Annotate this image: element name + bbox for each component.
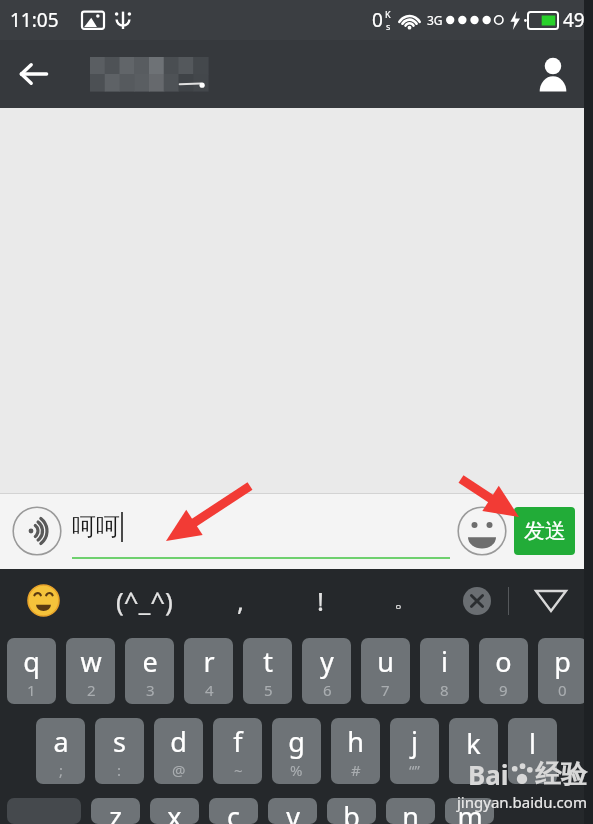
button[interactable]: j	[390, 718, 439, 784]
staticText: ;	[59, 760, 64, 780]
staticText: f	[233, 723, 243, 760]
staticText: i	[441, 643, 448, 680]
staticText: ,	[237, 583, 244, 618]
staticText: :	[117, 760, 122, 780]
staticText: t	[263, 643, 273, 680]
staticText: u	[377, 643, 394, 680]
button[interactable]: c	[209, 798, 258, 824]
button[interactable]: g	[272, 718, 321, 784]
staticText: ~	[234, 760, 243, 780]
staticText: 0	[558, 680, 567, 700]
button[interactable]: e	[125, 638, 174, 704]
button[interactable]: ,	[202, 569, 278, 632]
staticText: h	[347, 723, 364, 760]
button[interactable]: p	[538, 638, 587, 704]
staticText: 9	[499, 680, 508, 700]
staticText: 4	[205, 680, 214, 700]
button[interactable]: Hide keyboard	[509, 569, 593, 632]
staticText: j	[411, 723, 418, 760]
staticText: “”	[409, 760, 420, 780]
button[interactable]: u	[361, 638, 410, 704]
staticText: s	[113, 723, 126, 760]
button[interactable]: f	[213, 718, 262, 784]
button[interactable]: Voice input	[10, 504, 64, 558]
staticText: #	[351, 760, 361, 780]
button[interactable]: m	[445, 798, 494, 824]
staticText: 6	[323, 680, 332, 700]
staticText: c	[227, 798, 240, 824]
button[interactable]: y	[302, 638, 351, 704]
button[interactable]: 呵呵	[72, 493, 450, 569]
staticText: !	[317, 583, 324, 618]
staticText: a	[53, 723, 69, 760]
button[interactable]: n	[386, 798, 435, 824]
button[interactable]: v	[268, 798, 317, 824]
button[interactable]: Back	[8, 48, 60, 100]
staticText: 呵呵	[72, 512, 120, 542]
staticText: Bai	[468, 757, 509, 792]
staticText: (^_^)	[116, 583, 173, 618]
button[interactable]: t	[243, 638, 292, 704]
button[interactable]: 发送	[514, 507, 575, 555]
staticText: m	[457, 798, 483, 824]
button[interactable]: r	[184, 638, 233, 704]
staticText: k	[466, 725, 481, 762]
staticText: 3G	[427, 12, 443, 28]
staticText: g	[288, 723, 305, 760]
button[interactable]: s	[95, 718, 144, 784]
staticText: p	[554, 643, 571, 680]
button[interactable]: q	[7, 638, 56, 704]
staticText: %	[290, 760, 303, 780]
staticText: s	[386, 20, 391, 32]
staticText: r	[203, 643, 215, 680]
button[interactable]: i	[420, 638, 469, 704]
button[interactable]: d	[154, 718, 203, 784]
button[interactable]: 。	[362, 569, 446, 632]
staticText: 1	[27, 680, 36, 700]
staticText: 。	[394, 588, 414, 613]
staticText: 11:05	[10, 7, 59, 33]
button[interactable]: l	[508, 718, 557, 784]
staticText: 3	[146, 680, 155, 700]
button[interactable]: Delete	[446, 569, 508, 632]
staticText: z	[109, 798, 122, 824]
staticText: o	[495, 643, 512, 680]
button[interactable]: a	[36, 718, 85, 784]
staticText: y	[320, 643, 334, 680]
staticText: d	[170, 723, 187, 760]
button[interactable]: Emoji	[454, 503, 510, 559]
staticText: x	[167, 798, 182, 824]
staticText: 7	[381, 680, 390, 700]
staticText: 0	[372, 7, 383, 33]
staticText: l	[529, 725, 536, 762]
staticText: v	[286, 798, 300, 824]
button[interactable]: Contact profile	[527, 48, 579, 100]
staticText: b	[343, 798, 360, 824]
button[interactable]: k	[449, 718, 498, 784]
button[interactable]: (^_^)	[86, 569, 202, 632]
staticText: q	[23, 643, 40, 680]
button[interactable]: h	[331, 718, 380, 784]
staticText: 发送	[524, 518, 566, 544]
staticText: n	[402, 798, 419, 824]
button[interactable]: x	[150, 798, 199, 824]
button[interactable]: b	[327, 798, 376, 824]
staticText: 经验	[535, 758, 587, 791]
staticText: @	[172, 760, 186, 780]
button[interactable]: w	[66, 638, 115, 704]
button[interactable]: !	[278, 569, 362, 632]
button[interactable]: Emoji panel	[0, 569, 86, 632]
staticText: K	[385, 8, 391, 20]
button[interactable]: o	[479, 638, 528, 704]
staticText: jingyan.baidu.com	[457, 792, 587, 812]
staticText: e	[142, 643, 158, 680]
staticText: 8	[440, 680, 449, 700]
staticText: 49	[563, 7, 585, 33]
button[interactable]: Shift	[7, 798, 81, 824]
staticText: 2	[87, 680, 96, 700]
button[interactable]: z	[91, 798, 140, 824]
staticText: 5	[264, 680, 273, 700]
staticText: w	[80, 643, 102, 680]
